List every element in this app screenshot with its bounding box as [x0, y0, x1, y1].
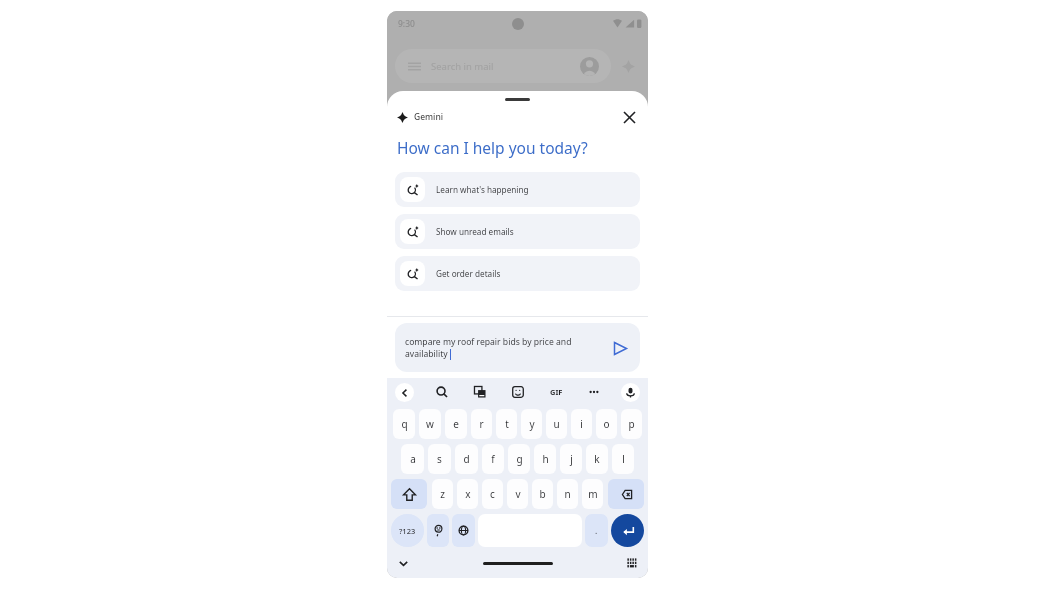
- staticText: p: [628, 417, 635, 431]
- button[interactable]: ?123: [391, 514, 424, 547]
- staticText: d: [463, 452, 470, 466]
- button[interactable]: t: [496, 409, 517, 439]
- button[interactable]: Back: [395, 383, 414, 402]
- button[interactable]: c: [482, 479, 503, 509]
- staticText: x: [465, 487, 471, 501]
- other: Open navigation menu: [407, 59, 422, 74]
- button[interactable]: Open navigation menu: [395, 49, 611, 83]
- staticText: l: [622, 452, 625, 466]
- staticText: compare my roof repair bids by price and: [405, 336, 572, 348]
- staticText: v: [515, 487, 521, 501]
- staticText: j: [570, 452, 573, 466]
- button[interactable]: Search: [431, 381, 453, 403]
- staticText: q: [401, 417, 408, 431]
- staticText: GIF: [550, 387, 563, 397]
- button[interactable]: .: [585, 514, 608, 547]
- button[interactable]: x: [457, 479, 478, 509]
- button[interactable]: Close: [616, 104, 642, 130]
- button[interactable]: GIF: [545, 381, 567, 403]
- button[interactable]: j: [560, 444, 582, 474]
- staticText: Learn what's happening: [436, 184, 529, 195]
- button[interactable]: k: [586, 444, 608, 474]
- button[interactable]: Backspace: [608, 479, 644, 509]
- button[interactable]: b: [532, 479, 553, 509]
- button[interactable]: Hide keyboard: [393, 553, 413, 573]
- button[interactable]: Voice input: [621, 383, 640, 402]
- staticText: availability: [405, 348, 448, 360]
- staticText: m: [588, 487, 598, 501]
- button[interactable]: d: [455, 444, 478, 474]
- staticText: 9:30: [398, 18, 415, 30]
- staticText: g: [516, 452, 523, 466]
- staticText: b: [539, 487, 546, 501]
- button[interactable]: Keyboard settings: [622, 553, 642, 573]
- staticText: Show unread emails: [436, 226, 514, 237]
- button[interactable]: n: [557, 479, 578, 509]
- button[interactable]: Send: [608, 336, 632, 360]
- staticText: n: [564, 487, 571, 501]
- staticText: a: [410, 452, 416, 466]
- button[interactable]: Enter: [611, 514, 644, 547]
- staticText: s: [437, 452, 442, 466]
- staticText: u: [553, 417, 560, 431]
- staticText: k: [594, 452, 600, 466]
- staticText: i: [580, 417, 583, 431]
- button[interactable]: l: [612, 444, 634, 474]
- staticText: Gemini: [414, 111, 444, 123]
- button[interactable]: More options: [583, 381, 605, 403]
- button[interactable]: h: [534, 444, 556, 474]
- button[interactable]: p: [621, 409, 642, 439]
- staticText: y: [529, 417, 535, 431]
- staticText: z: [440, 487, 445, 501]
- staticText: r: [479, 417, 484, 431]
- button[interactable]: s: [428, 444, 451, 474]
- staticText: w: [426, 417, 434, 431]
- staticText: o: [603, 417, 610, 431]
- staticText: Get order details: [436, 268, 501, 279]
- staticText: f: [491, 452, 495, 466]
- staticText: ?123: [399, 526, 416, 536]
- button[interactable]: r: [471, 409, 492, 439]
- button[interactable]: Show unread emails: [395, 214, 640, 249]
- staticText: t: [505, 417, 509, 431]
- button[interactable]: Learn what's happening: [395, 172, 640, 207]
- button[interactable]: Gemini: [616, 54, 640, 78]
- button[interactable]: f: [482, 444, 504, 474]
- staticText: Search in mail: [431, 60, 494, 73]
- button[interactable]: Shift: [391, 479, 427, 509]
- button[interactable]: o: [596, 409, 617, 439]
- button[interactable]: Emoji: [427, 514, 449, 547]
- staticText: How can I help you today?: [397, 137, 588, 158]
- button[interactable]: y: [521, 409, 542, 439]
- button[interactable]: compare my roof repair bids by price and: [395, 323, 640, 372]
- staticText: c: [490, 487, 495, 501]
- button[interactable]: Get order details: [395, 256, 640, 291]
- staticText: h: [542, 452, 549, 466]
- button[interactable]: m: [582, 479, 603, 509]
- button[interactable]: q: [393, 409, 415, 439]
- button[interactable]: w: [419, 409, 441, 439]
- button[interactable]: u: [546, 409, 567, 439]
- button[interactable]: z: [432, 479, 453, 509]
- button[interactable]: a: [401, 444, 424, 474]
- button[interactable]: i: [571, 409, 592, 439]
- button[interactable]: g: [508, 444, 530, 474]
- button[interactable]: Change language: [452, 514, 475, 547]
- button[interactable]: Account: [580, 57, 599, 76]
- button[interactable]: v: [507, 479, 528, 509]
- button[interactable]: Stickers: [507, 381, 529, 403]
- staticText: .: [595, 525, 598, 537]
- staticText: e: [453, 417, 459, 431]
- button[interactable]: e: [445, 409, 467, 439]
- button[interactable]: Translate: [469, 381, 491, 403]
